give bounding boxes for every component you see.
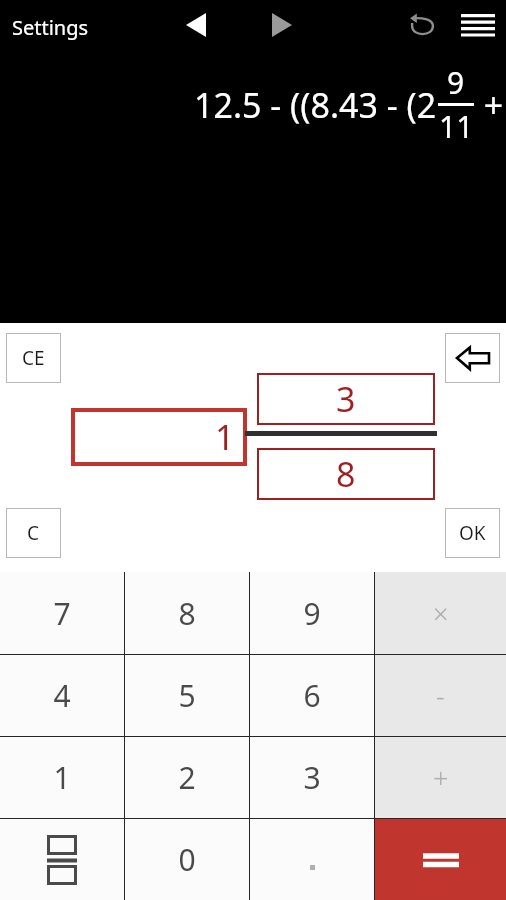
button[interactable]: Fraction xyxy=(0,819,124,900)
button[interactable]: 0 xyxy=(125,819,249,900)
button[interactable]: Menu xyxy=(450,0,506,50)
button[interactable]: 6 xyxy=(250,655,374,736)
staticText: Settings xyxy=(12,14,89,41)
staticText: 5 xyxy=(178,675,196,716)
button[interactable]: 3 xyxy=(250,737,374,818)
button[interactable]: OK xyxy=(445,508,500,558)
staticText: 2 xyxy=(178,757,196,798)
staticText: 3 xyxy=(303,757,321,798)
button[interactable]: Previous xyxy=(168,0,224,50)
staticText: + xyxy=(433,759,449,796)
button[interactable]: × xyxy=(375,572,506,654)
button[interactable]: 5 xyxy=(125,655,249,736)
staticText: 11 xyxy=(439,106,474,147)
button[interactable]: Next xyxy=(254,0,310,50)
staticText: C xyxy=(27,520,40,546)
staticText: 9 xyxy=(447,62,465,103)
staticText: 1 xyxy=(53,757,71,798)
button[interactable]: C xyxy=(6,508,61,558)
button[interactable]: 1 xyxy=(0,737,124,818)
staticText: × xyxy=(433,595,449,632)
staticText: 8 xyxy=(336,451,356,497)
staticText: CE xyxy=(22,345,45,371)
staticText: OK xyxy=(459,520,486,546)
staticText: 3 xyxy=(336,376,356,422)
button[interactable]: Undo xyxy=(396,0,448,50)
button[interactable]: 8 xyxy=(257,448,435,500)
staticText: 6 xyxy=(303,675,321,716)
staticText: 12.5 - ((8.43 - (2 xyxy=(194,82,437,128)
staticText: 8 xyxy=(178,593,196,634)
button[interactable]: Equals xyxy=(375,819,506,900)
button[interactable]: 4 xyxy=(0,655,124,736)
staticText: 7 xyxy=(53,593,71,634)
button[interactable]: Settings xyxy=(4,8,97,47)
button[interactable]: 1 xyxy=(71,408,247,466)
button[interactable]: 3 xyxy=(257,373,435,425)
button[interactable]: Backspace xyxy=(445,333,500,383)
button[interactable]: 8 xyxy=(125,572,249,654)
button[interactable]: Decimal point xyxy=(250,819,374,900)
staticText: 4 xyxy=(53,675,71,716)
staticText: - xyxy=(436,677,445,714)
staticText: + xyxy=(475,82,504,128)
button[interactable]: CE xyxy=(6,333,61,383)
staticText: 0 xyxy=(178,839,196,880)
staticText: 1 xyxy=(215,414,235,460)
staticText: 9 xyxy=(303,593,321,634)
button[interactable]: 2 xyxy=(125,737,249,818)
button[interactable]: 7 xyxy=(0,572,124,654)
button[interactable]: 9 xyxy=(250,572,374,654)
